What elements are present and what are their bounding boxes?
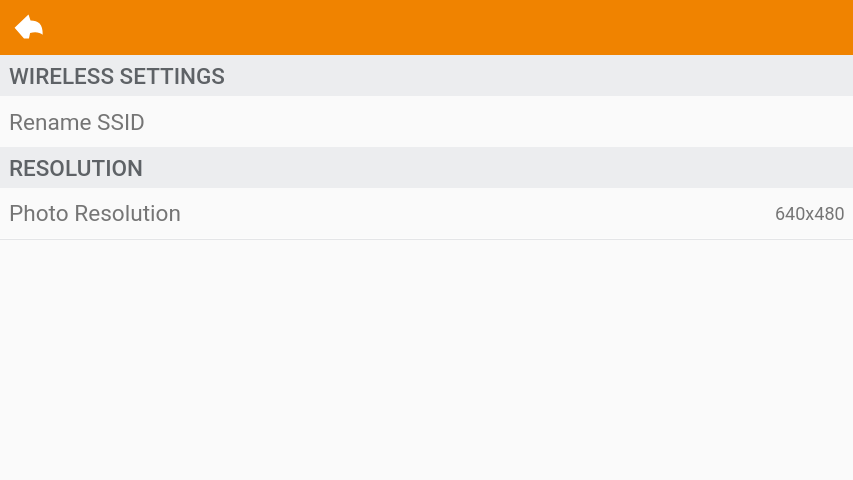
staticText: Photo Resolution <box>9 200 181 226</box>
staticText: RESOLUTION <box>9 155 144 181</box>
button[interactable]: Rename SSID <box>0 96 853 147</box>
staticText: WIRELESS SETTINGS <box>9 63 225 89</box>
staticText: 640x480 <box>775 203 845 224</box>
staticText: Rename SSID <box>9 109 145 135</box>
button[interactable]: Back <box>5 4 53 52</box>
button[interactable]: Photo Resolution <box>0 188 853 238</box>
